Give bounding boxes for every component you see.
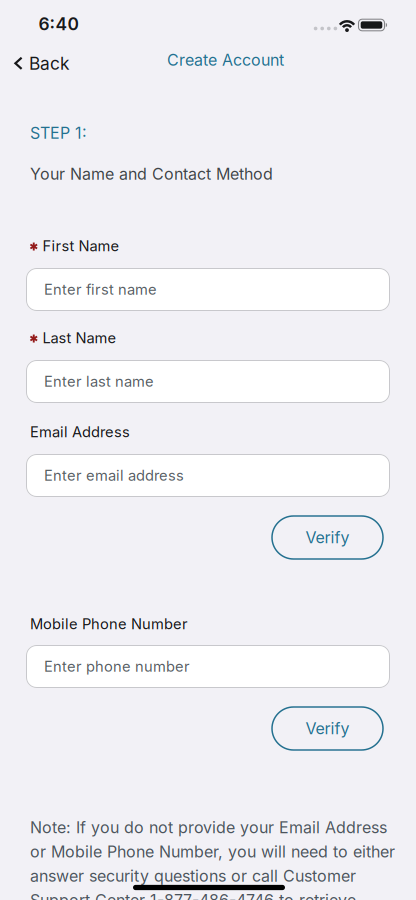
staticText: Enter last name bbox=[44, 373, 154, 390]
staticText: STEP 1: bbox=[30, 124, 87, 142]
staticText: Your Name and Contact Method bbox=[30, 165, 273, 183]
staticText: Mobile Phone Number bbox=[30, 615, 188, 633]
staticText: Back bbox=[29, 53, 70, 74]
button[interactable]: Enter email address bbox=[26, 454, 390, 497]
button[interactable]: Verify bbox=[272, 707, 383, 750]
staticText: Enter phone number bbox=[44, 658, 190, 675]
button[interactable]: Enter first name bbox=[26, 268, 390, 311]
staticText: Enter email address bbox=[44, 467, 184, 484]
staticText: Verify bbox=[305, 719, 349, 738]
staticText: 6:40 bbox=[38, 14, 78, 34]
staticText: Note: If you do not provide your Email A… bbox=[30, 818, 395, 900]
staticText: Enter first name bbox=[44, 281, 157, 298]
staticText: Last Name bbox=[42, 329, 116, 347]
staticText: First Name bbox=[42, 237, 119, 255]
staticText: Email Address bbox=[30, 423, 130, 441]
button[interactable]: Verify bbox=[272, 516, 383, 559]
button[interactable]: Enter last name bbox=[26, 360, 390, 403]
button[interactable]: Enter phone number bbox=[26, 645, 390, 688]
staticText: Create Account bbox=[167, 51, 284, 69]
button[interactable]: Back bbox=[14, 53, 70, 74]
staticText: Verify bbox=[305, 528, 349, 547]
